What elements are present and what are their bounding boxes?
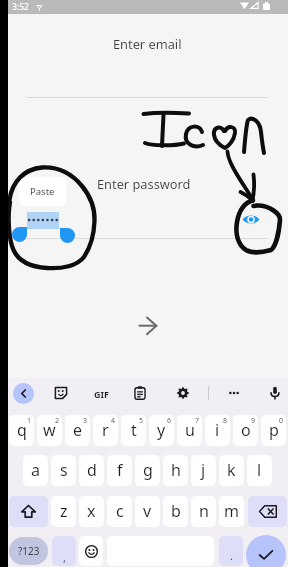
staticText: o bbox=[241, 419, 251, 441]
staticText: x bbox=[87, 500, 96, 522]
staticText: n bbox=[199, 500, 209, 522]
button[interactable]: w bbox=[37, 415, 62, 446]
button[interactable]: ?123 bbox=[9, 537, 48, 565]
staticText: 3 bbox=[83, 416, 88, 426]
staticText: p bbox=[269, 419, 279, 441]
staticText: 0 bbox=[279, 416, 284, 426]
button[interactable]: p bbox=[261, 415, 286, 446]
button[interactable]: i bbox=[205, 415, 230, 446]
staticText: k bbox=[227, 459, 236, 481]
button[interactable]: t bbox=[121, 415, 146, 446]
staticText: a bbox=[31, 459, 40, 481]
staticText: . bbox=[230, 548, 233, 563]
button[interactable]: x bbox=[79, 496, 104, 527]
staticText: 4 bbox=[111, 416, 116, 426]
button[interactable]: m bbox=[219, 496, 244, 527]
staticText: q bbox=[17, 419, 27, 441]
button[interactable]: o bbox=[233, 415, 258, 446]
button[interactable]: z bbox=[51, 496, 76, 527]
button[interactable]: More options bbox=[223, 382, 245, 404]
staticText: l bbox=[257, 459, 262, 481]
button[interactable]: Back bbox=[13, 383, 34, 404]
button[interactable]: v bbox=[135, 496, 160, 527]
staticText: t bbox=[131, 419, 137, 441]
staticText: j bbox=[201, 459, 206, 481]
button[interactable]: . bbox=[219, 536, 243, 566]
button[interactable]: , bbox=[52, 536, 76, 566]
staticText: c bbox=[116, 500, 124, 522]
staticText: Paste bbox=[30, 185, 55, 198]
button[interactable]: Settings bbox=[172, 382, 194, 404]
button[interactable]: Backspace bbox=[248, 496, 287, 527]
button[interactable]: b bbox=[163, 496, 188, 527]
staticText: y bbox=[157, 419, 166, 441]
button[interactable]: GIF bbox=[89, 383, 114, 404]
staticText: 1 bbox=[27, 416, 32, 426]
staticText: 6 bbox=[167, 416, 172, 426]
staticText: g bbox=[143, 459, 153, 481]
staticText: 2 bbox=[55, 416, 60, 426]
staticText: h bbox=[171, 459, 181, 481]
button[interactable]: k bbox=[219, 455, 244, 486]
button[interactable]: Voice input bbox=[264, 382, 286, 404]
button[interactable]: s bbox=[51, 455, 76, 486]
staticText: e bbox=[73, 419, 83, 441]
staticText: d bbox=[87, 459, 97, 481]
button[interactable]: j bbox=[191, 455, 216, 486]
button[interactable]: Emoji bbox=[79, 536, 103, 566]
staticText: GIF bbox=[94, 388, 109, 400]
staticText: Enter password bbox=[97, 175, 191, 192]
button[interactable]: Next bbox=[134, 313, 159, 338]
button[interactable]: Shift bbox=[9, 496, 48, 527]
button[interactable]: g bbox=[135, 455, 160, 486]
staticText: s bbox=[60, 459, 68, 481]
staticText: m bbox=[224, 500, 239, 522]
button[interactable]: Show password bbox=[238, 206, 264, 232]
button[interactable]: h bbox=[163, 455, 188, 486]
staticText: 5 bbox=[139, 416, 144, 426]
staticText: 9 bbox=[251, 416, 256, 426]
button[interactable]: l bbox=[247, 455, 272, 486]
staticText: v bbox=[143, 500, 152, 522]
staticText: ?123 bbox=[18, 544, 40, 558]
staticText: f bbox=[117, 459, 123, 481]
button[interactable]: a bbox=[23, 455, 48, 486]
button[interactable]: n bbox=[191, 496, 216, 527]
staticText: u bbox=[185, 419, 195, 441]
button[interactable]: d bbox=[79, 455, 104, 486]
button[interactable]: q bbox=[9, 415, 34, 446]
button[interactable]: Clipboard bbox=[129, 382, 151, 404]
button[interactable]: c bbox=[107, 496, 132, 527]
button[interactable]: u bbox=[177, 415, 202, 446]
staticText: b bbox=[171, 500, 181, 522]
button[interactable]: Stickers bbox=[50, 382, 72, 404]
button[interactable]: f bbox=[107, 455, 132, 486]
staticText: w bbox=[43, 419, 56, 441]
staticText: z bbox=[60, 500, 68, 522]
button[interactable]: y bbox=[149, 415, 174, 446]
staticText: r bbox=[102, 419, 109, 441]
staticText: i bbox=[215, 419, 220, 441]
button[interactable]: Paste bbox=[19, 177, 66, 206]
button[interactable]: r bbox=[93, 415, 118, 446]
staticText: Enter email bbox=[113, 35, 182, 52]
staticText: 3:52 bbox=[12, 1, 29, 13]
staticText: 7 bbox=[195, 416, 200, 426]
staticText: , bbox=[63, 550, 66, 565]
staticText: 8 bbox=[223, 416, 228, 426]
button[interactable]: Enter bbox=[246, 535, 286, 567]
button[interactable]: e bbox=[65, 415, 90, 446]
